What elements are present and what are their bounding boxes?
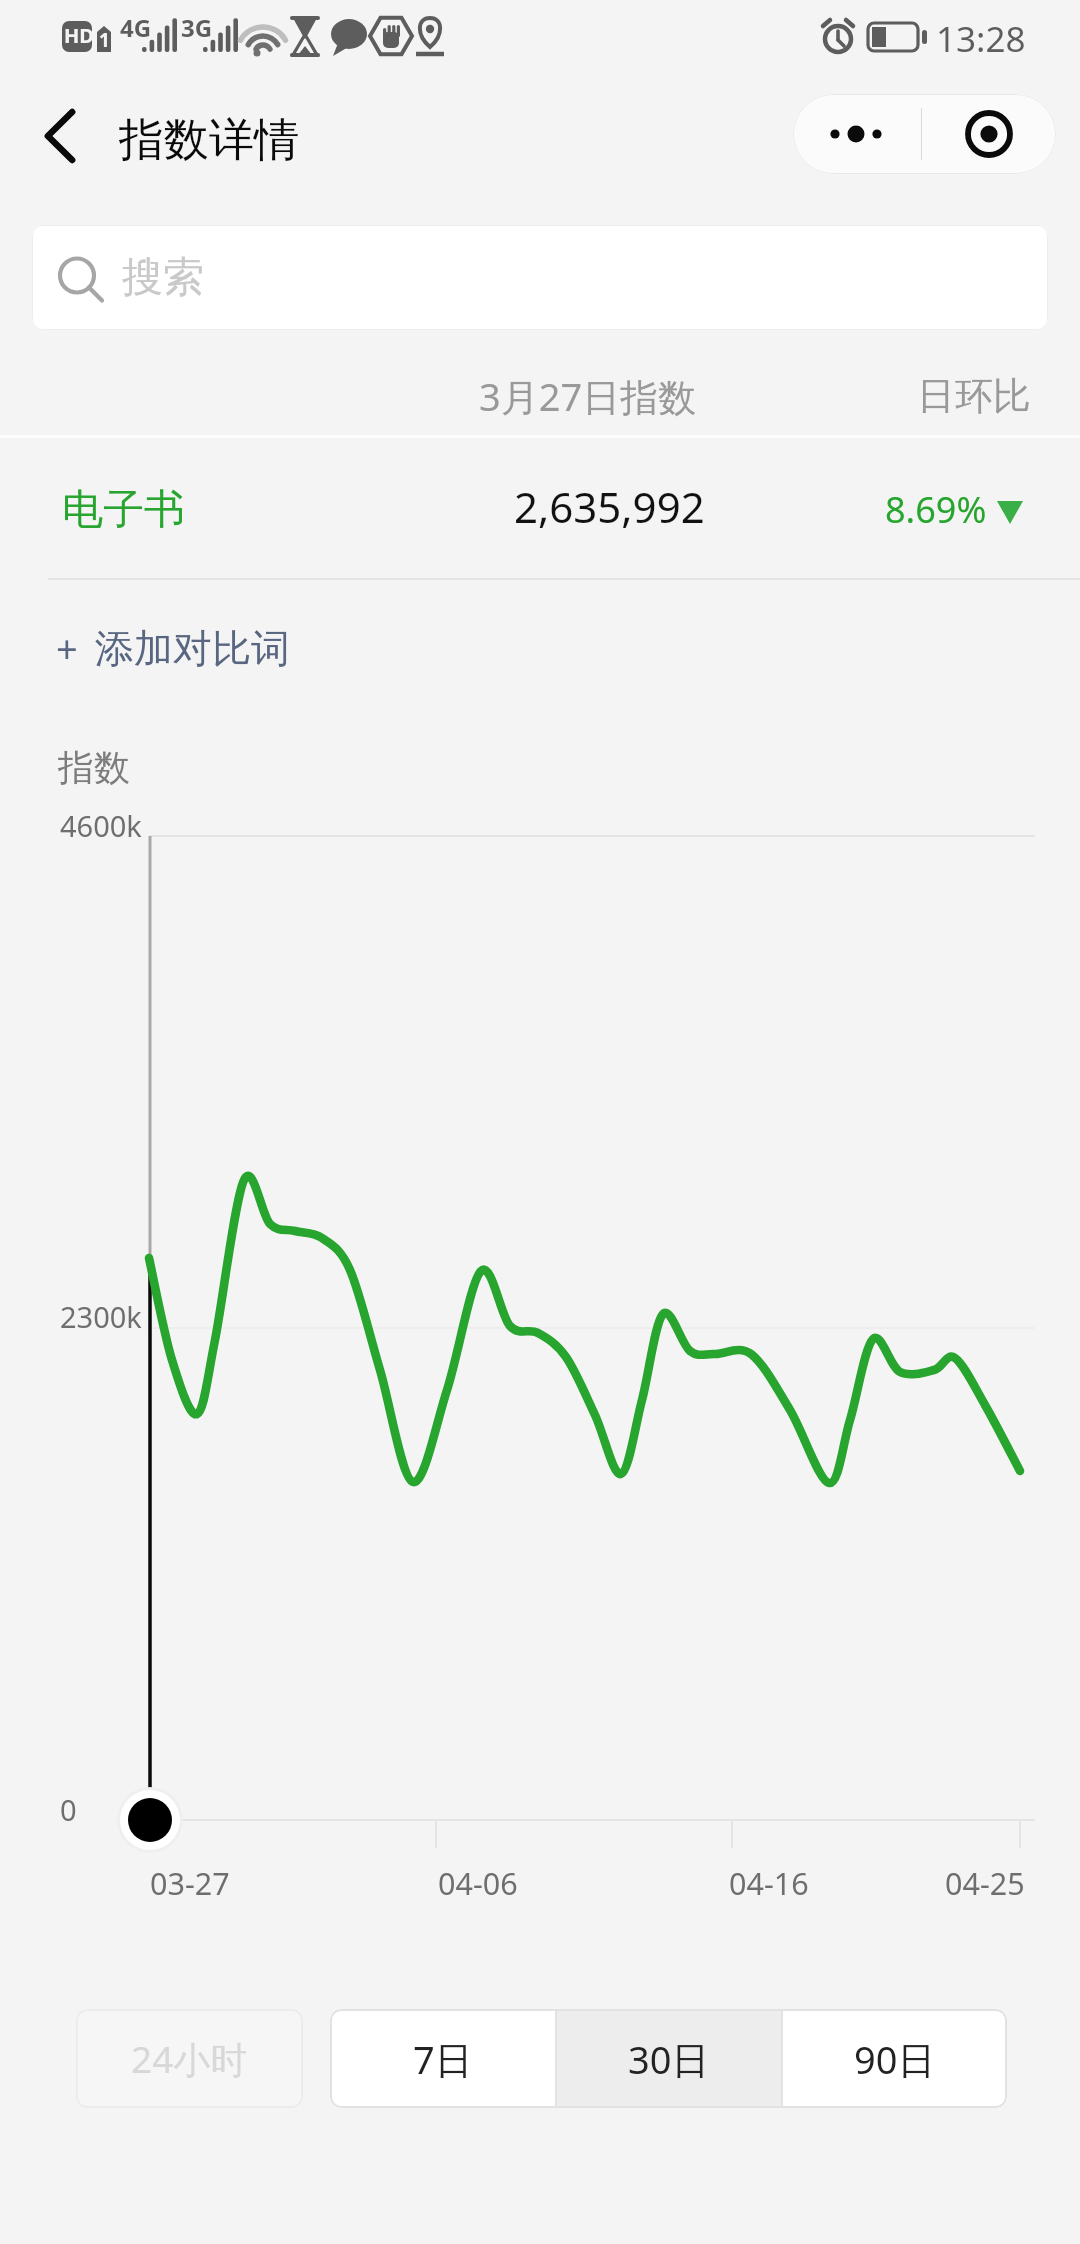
button[interactable]: Back bbox=[20, 96, 100, 176]
staticText: 1 bbox=[99, 27, 110, 53]
staticText: 添加对比词 bbox=[95, 624, 290, 673]
staticText: 指数 bbox=[58, 745, 130, 790]
staticText: 8.69% bbox=[885, 485, 987, 534]
staticText: 2,635,992 bbox=[514, 478, 705, 535]
staticText: HD bbox=[64, 22, 94, 49]
staticText: 指数详情 bbox=[119, 112, 299, 169]
button[interactable]: 30日 bbox=[557, 2009, 781, 2108]
staticText: 04-25 bbox=[945, 1862, 1025, 1904]
staticText: 4G bbox=[120, 11, 152, 44]
button[interactable]: + bbox=[40, 598, 306, 698]
staticText: 3G bbox=[181, 11, 213, 44]
button[interactable]: 7日 bbox=[330, 2009, 555, 2108]
staticText: 7日 bbox=[413, 2033, 473, 2085]
staticText: 3月27日指数 bbox=[479, 370, 697, 422]
staticText: 90日 bbox=[854, 2033, 936, 2085]
button[interactable]: Close mini program bbox=[922, 94, 1056, 174]
button[interactable]: More options bbox=[793, 94, 921, 174]
button[interactable]: 24小时 bbox=[76, 2009, 303, 2108]
staticText: 日环比 bbox=[917, 372, 1031, 420]
button[interactable]: 90日 bbox=[783, 2009, 1007, 2108]
staticText: 13:28 bbox=[936, 15, 1026, 63]
button[interactable]: 电子书 bbox=[0, 440, 1080, 580]
staticText: 24小时 bbox=[131, 2033, 248, 2084]
staticText: 03-27 bbox=[150, 1862, 230, 1904]
button[interactable]: 搜索 bbox=[32, 225, 1048, 330]
staticText: 搜索 bbox=[122, 252, 204, 304]
staticText: 0 bbox=[60, 1790, 77, 1829]
staticText: 04-16 bbox=[729, 1862, 809, 1904]
staticText: 04-06 bbox=[438, 1862, 518, 1904]
staticText: 30日 bbox=[628, 2033, 710, 2085]
staticText: 4600k bbox=[60, 806, 142, 845]
staticText: 电子书 bbox=[62, 484, 185, 536]
staticText: + bbox=[56, 622, 78, 674]
staticText: 2300k bbox=[60, 1297, 142, 1336]
